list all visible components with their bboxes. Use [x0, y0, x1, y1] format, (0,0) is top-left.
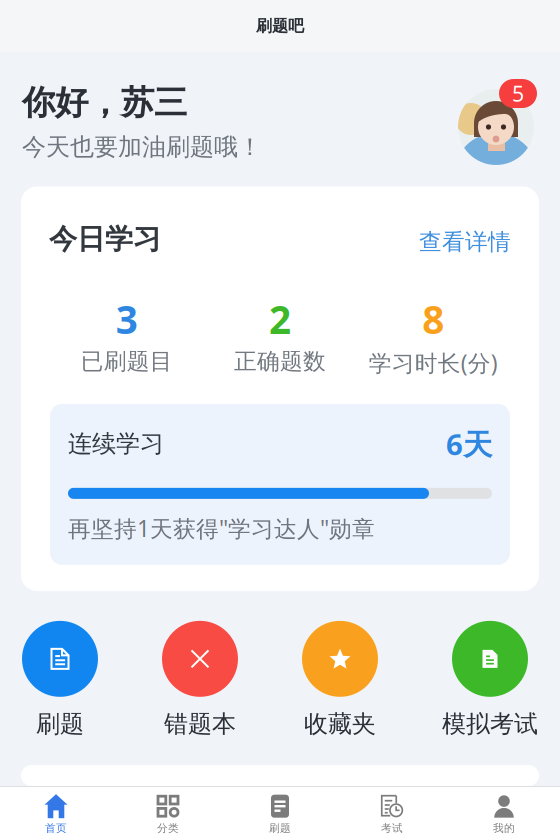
- staticText: 已刷题目: [81, 348, 173, 375]
- staticText: 刷题: [36, 709, 84, 739]
- button[interactable]: 查看详情: [419, 228, 511, 256]
- staticText: 学习时长(分): [369, 348, 498, 378]
- staticText: 8: [422, 293, 444, 345]
- staticText: 正确题数: [234, 348, 326, 375]
- staticText: 连续学习: [68, 429, 164, 459]
- button[interactable]: 模拟考试: [442, 621, 538, 739]
- button[interactable]: 刷题: [224, 794, 336, 835]
- button[interactable]: 刷题: [22, 621, 98, 739]
- staticText: 首页: [45, 822, 67, 835]
- staticText: 模拟考试: [442, 709, 538, 739]
- staticText: 今日学习: [49, 222, 161, 256]
- button[interactable]: 我的: [448, 794, 560, 835]
- button[interactable]: 首页: [0, 794, 112, 835]
- button[interactable]: 错题本: [162, 621, 238, 739]
- staticText: 刷题: [269, 822, 291, 835]
- staticText: 错题本: [164, 709, 236, 739]
- staticText: 5: [512, 79, 524, 108]
- staticText: 再坚持1天获得"学习达人"勋章: [68, 513, 375, 543]
- staticText: 2: [269, 293, 291, 345]
- staticText: 3: [116, 293, 138, 345]
- button[interactable]: 考试: [336, 794, 448, 835]
- staticText: 你好，苏三: [22, 82, 187, 123]
- staticText: 考试: [381, 822, 403, 835]
- staticText: 收藏夹: [304, 709, 376, 739]
- button[interactable]: 分类: [112, 794, 224, 835]
- button[interactable]: 收藏夹: [302, 621, 378, 739]
- staticText: 我的: [493, 822, 515, 835]
- staticText: 今天也要加油刷题哦！: [22, 132, 262, 162]
- staticText: 查看详情: [419, 228, 511, 256]
- staticText: 分类: [157, 822, 179, 835]
- staticText: 刷题吧: [256, 16, 304, 36]
- button[interactable]: Profile: [457, 79, 538, 165]
- staticText: 6天: [446, 424, 492, 463]
